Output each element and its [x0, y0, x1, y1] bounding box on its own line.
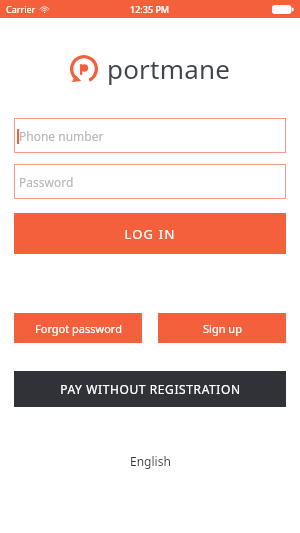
- button[interactable]: Password: [14, 164, 286, 199]
- button[interactable]: PAY WITHOUT REGISTRATION: [14, 371, 286, 407]
- button[interactable]: Forgot password: [14, 313, 142, 343]
- button[interactable]: Sign up: [158, 313, 286, 343]
- staticText: Phone number: [19, 128, 104, 144]
- staticText: 12:35 PM: [130, 3, 170, 15]
- staticText: PAY WITHOUT REGISTRATION: [60, 381, 241, 397]
- button[interactable]: LOG IN: [14, 213, 286, 254]
- staticText: LOG IN: [124, 225, 176, 243]
- staticText: Carrier: [6, 3, 36, 15]
- staticText: Password: [19, 174, 74, 190]
- staticText: Forgot password: [35, 321, 122, 336]
- staticText: Sign up: [203, 321, 242, 336]
- button[interactable]: English: [114, 447, 187, 475]
- staticText: English: [130, 453, 171, 469]
- button[interactable]: Phone number: [14, 118, 286, 153]
- staticText: portmane: [107, 51, 231, 86]
